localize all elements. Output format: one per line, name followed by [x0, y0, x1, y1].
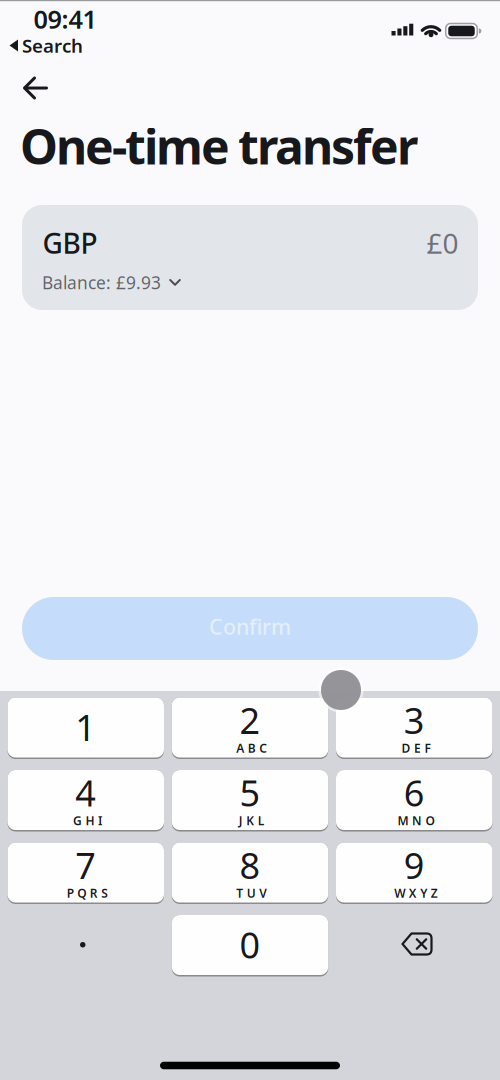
button[interactable]: Back to Search: [0, 0, 110, 56]
staticText: DEF: [401, 740, 430, 756]
button[interactable]: 0: [172, 915, 328, 976]
button[interactable]: Delete: [336, 915, 492, 976]
staticText: 5: [239, 769, 260, 816]
staticText: JKL: [239, 812, 265, 828]
staticText: Confirm: [209, 612, 291, 641]
button[interactable]: Back: [0, 66, 60, 110]
staticText: 3: [404, 696, 425, 744]
staticText: 7: [75, 841, 96, 889]
button[interactable]: 5: [172, 770, 328, 831]
button[interactable]: Decimal point: [7, 915, 164, 976]
button[interactable]: 7: [7, 842, 164, 904]
staticText: 6: [404, 769, 425, 816]
staticText: 1: [75, 703, 96, 751]
staticText: ABC: [236, 740, 267, 756]
staticText: 4: [75, 769, 96, 816]
staticText: GBP: [42, 224, 97, 262]
button[interactable]: 1: [7, 697, 164, 759]
staticText: One-time transfer: [20, 114, 418, 178]
button[interactable]: Confirm: [22, 597, 478, 660]
staticText: TUV: [236, 885, 267, 901]
staticText: Balance: £9.93: [42, 271, 161, 294]
staticText: 2: [239, 696, 260, 744]
button[interactable]: 4: [7, 770, 164, 831]
staticText: GHI: [73, 812, 102, 828]
button[interactable]: 6: [336, 770, 492, 831]
button[interactable]: 3: [336, 697, 492, 759]
staticText: £0: [426, 224, 458, 262]
staticText: 8: [239, 841, 260, 889]
staticText: 9: [404, 841, 425, 889]
staticText: PQRS: [67, 885, 108, 901]
staticText: Search: [22, 33, 83, 58]
staticText: WXYZ: [394, 885, 438, 901]
staticText: 0: [239, 921, 260, 968]
staticText: MNO: [397, 812, 434, 828]
button[interactable]: 9: [336, 842, 492, 904]
button[interactable]: 8: [172, 842, 328, 904]
button[interactable]: 2: [172, 697, 328, 759]
button[interactable]: GBP: [22, 205, 478, 310]
staticText: 09:41: [33, 2, 96, 36]
